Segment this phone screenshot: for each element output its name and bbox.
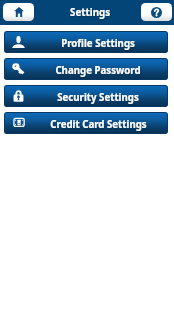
button[interactable]: Home xyxy=(3,3,34,21)
button[interactable]: Credit Card Settings xyxy=(4,112,168,134)
staticText: Profile Settings xyxy=(61,37,135,50)
button[interactable]: Security Settings xyxy=(4,85,168,107)
button[interactable]: Profile Settings xyxy=(4,31,168,53)
button[interactable]: Help xyxy=(141,3,172,21)
staticText: Settings xyxy=(70,6,111,19)
staticText: Security Settings xyxy=(57,91,139,104)
button[interactable]: Change Password xyxy=(4,58,168,80)
staticText: Change Password xyxy=(55,64,141,77)
staticText: Credit Card Settings xyxy=(50,118,147,131)
